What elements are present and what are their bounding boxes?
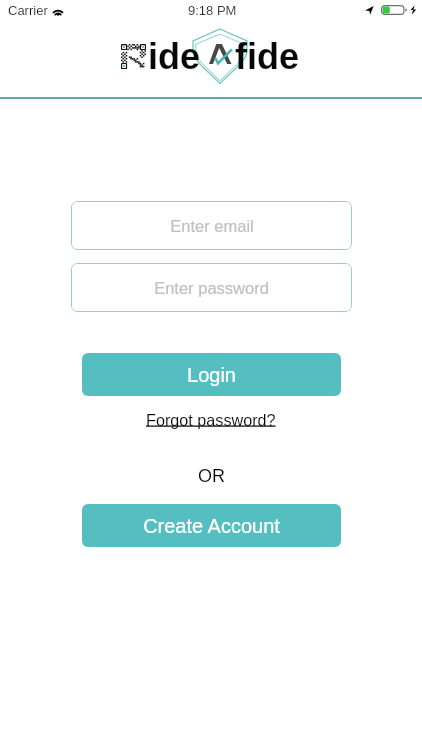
- staticText: 9:18 PM: [188, 3, 237, 18]
- staticText: Enter email: [170, 217, 254, 235]
- staticText: Enter password: [154, 279, 269, 297]
- button[interactable]: Login: [82, 353, 341, 396]
- button[interactable]: Enter email: [71, 201, 352, 250]
- staticText: Forgot password?: [146, 411, 276, 429]
- staticText: fide: [235, 36, 300, 76]
- button[interactable]: Forgot password?: [142, 408, 280, 432]
- button[interactable]: Enter password: [71, 263, 352, 312]
- staticText: Create Account: [143, 515, 280, 537]
- staticText: OR: [198, 466, 225, 486]
- staticText: Login: [187, 364, 236, 386]
- button[interactable]: Create Account: [82, 504, 341, 547]
- staticText: Carrier: [8, 3, 48, 18]
- staticText: ide: [148, 36, 201, 76]
